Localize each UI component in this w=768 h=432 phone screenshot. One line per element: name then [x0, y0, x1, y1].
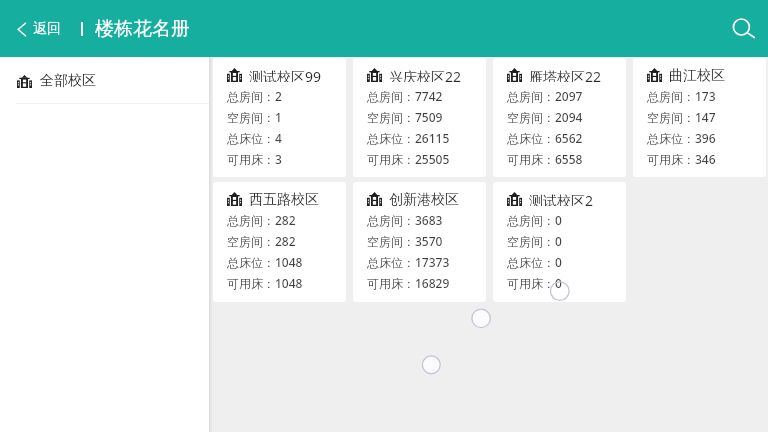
staticText: 可用床：6558: [507, 151, 583, 167]
staticText: 总床位：0: [507, 254, 562, 270]
staticText: 可用床：346: [647, 151, 716, 167]
staticText: 创新港校区: [389, 191, 459, 206]
staticText: 可用床：3: [227, 151, 282, 167]
staticText: 兴庆校区22: [389, 67, 462, 82]
button[interactable]: 西五路校区: [213, 182, 346, 302]
staticText: 总房间：2097: [507, 88, 583, 104]
staticText: 总床位：6562: [507, 130, 583, 146]
button[interactable]: Search: [720, 0, 768, 57]
staticText: 总房间：3683: [367, 212, 443, 228]
staticText: 雁塔校区22: [529, 67, 602, 82]
staticText: 总房间：173: [647, 88, 716, 104]
staticText: 总床位：1048: [227, 254, 303, 270]
staticText: 空房间：3570: [367, 233, 443, 249]
staticText: 总房间：2: [227, 88, 282, 104]
staticText: 空房间：282: [227, 233, 296, 249]
button[interactable]: 测试校区2: [493, 182, 626, 302]
staticText: 总床位：396: [647, 130, 716, 146]
staticText: 返回: [33, 20, 61, 38]
staticText: 空房间：2094: [507, 109, 583, 125]
button[interactable]: 创新港校区: [353, 182, 486, 302]
staticText: 西五路校区: [249, 191, 319, 206]
staticText: 曲江校区: [669, 67, 725, 82]
staticText: 全部校区: [40, 72, 96, 90]
button[interactable]: 返回: [0, 12, 67, 46]
button[interactable]: 曲江校区: [633, 58, 766, 177]
staticText: 空房间：0: [507, 233, 562, 249]
button[interactable]: 测试校区99: [213, 58, 346, 177]
staticText: 空房间：1: [227, 109, 282, 125]
button[interactable]: 兴庆校区22: [353, 58, 486, 177]
staticText: 可用床：25505: [367, 151, 450, 167]
staticText: 可用床：1048: [227, 275, 303, 291]
staticText: 空房间：147: [647, 109, 716, 125]
staticText: 总房间：0: [507, 212, 562, 228]
staticText: 测试校区99: [249, 67, 322, 82]
staticText: 总床位：26115: [367, 130, 450, 146]
button[interactable]: 全部校区: [0, 57, 209, 103]
staticText: 可用床：16829: [367, 275, 450, 291]
staticText: 总房间：7742: [367, 88, 443, 104]
staticText: 楼栋花名册: [95, 17, 190, 41]
button[interactable]: 雁塔校区22: [493, 58, 626, 177]
staticText: 测试校区2: [529, 191, 594, 206]
staticText: 可用床：0: [507, 275, 562, 291]
staticText: 总床位：4: [227, 130, 282, 146]
staticText: 总房间：282: [227, 212, 296, 228]
staticText: 总床位：17373: [367, 254, 450, 270]
staticText: 空房间：7509: [367, 109, 443, 125]
